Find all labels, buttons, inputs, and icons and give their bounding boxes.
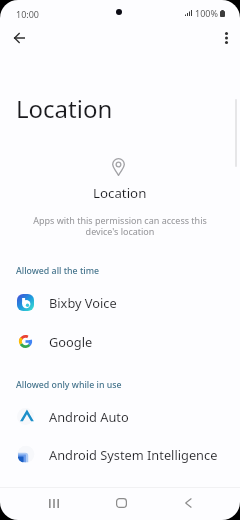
staticText: Apps with this permission can access thi…: [26, 214, 214, 238]
button[interactable]: Home: [104, 488, 138, 520]
button[interactable]: Back: [5, 24, 33, 52]
staticText: 100%: [195, 7, 218, 19]
button[interactable]: Bixby Voice: [0, 284, 240, 320]
staticText: Location: [16, 92, 113, 125]
button[interactable]: Android System Intelligence: [0, 436, 240, 472]
button[interactable]: More options: [212, 24, 240, 52]
staticText: Android System Intelligence: [49, 446, 218, 463]
button[interactable]: Google: [0, 323, 240, 359]
staticText: 10:00: [16, 8, 40, 20]
button[interactable]: Android Auto: [0, 398, 240, 434]
staticText: Android Auto: [49, 408, 129, 425]
staticText: Google: [49, 333, 93, 350]
button[interactable]: Recents: [37, 488, 71, 520]
staticText: Allowed all the time: [16, 265, 100, 277]
staticText: Location: [93, 184, 147, 202]
staticText: Bixby Voice: [49, 294, 117, 311]
staticText: Allowed only while in use: [16, 379, 122, 391]
button[interactable]: Back: [171, 488, 205, 520]
